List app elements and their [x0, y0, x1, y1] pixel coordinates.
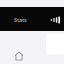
staticText: Stats: [14, 16, 27, 24]
button[interactable]: Home: [15, 52, 23, 60]
